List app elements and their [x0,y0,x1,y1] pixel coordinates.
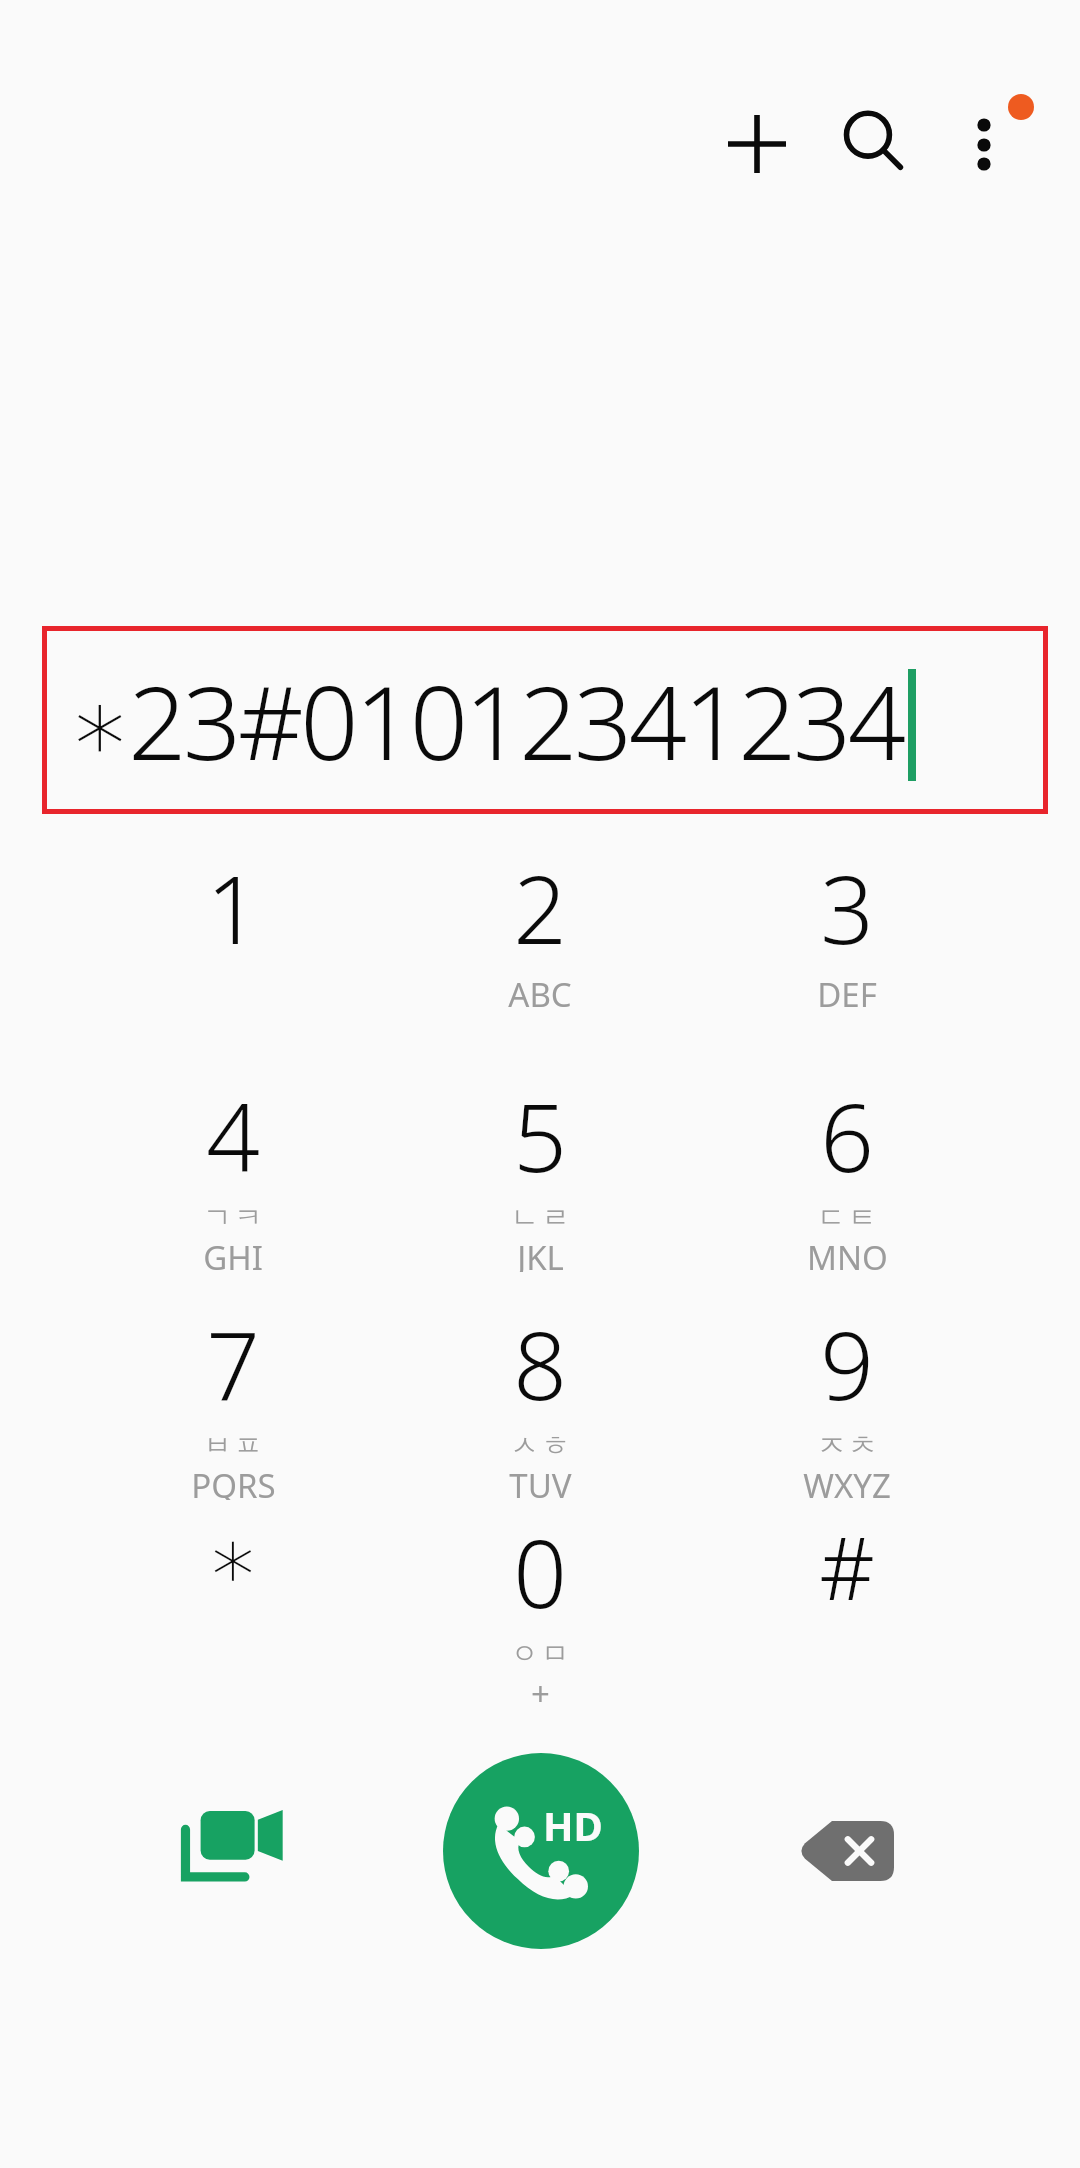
button[interactable]: 2 [390,844,690,1044]
button[interactable]: 4 [83,1072,383,1272]
staticText: # [819,1508,875,1625]
button[interactable]: 6 [697,1072,997,1272]
staticText: 3 [820,844,874,972]
button[interactable]: Call [443,1753,639,1949]
staticText: WXYZ [803,1463,891,1500]
staticText: HD [543,1798,603,1852]
button[interactable]: Search [830,99,920,189]
staticText: 1 [206,844,260,972]
button[interactable]: # [697,1508,997,1708]
button[interactable]: More options [938,70,1058,190]
button[interactable]: 0 [390,1508,690,1708]
staticText: TUV [509,1463,572,1500]
staticText: DEF [817,972,877,1017]
button[interactable]: Backspace [763,1766,933,1936]
staticText: PQRS [191,1463,276,1500]
staticText: 8 [513,1300,567,1428]
button[interactable]: ∗ [83,1508,383,1708]
button[interactable]: Add to contacts [712,99,802,189]
staticText: ㅈㅊ [816,1428,878,1463]
staticText: ㄴㄹ [509,1200,571,1235]
button[interactable]: 8 [390,1300,690,1500]
staticText: ABC [508,972,572,1017]
staticText: ㅂㅍ [202,1428,264,1463]
button[interactable]: 7 [83,1300,383,1500]
button[interactable]: 5 [390,1072,690,1272]
staticText: ∗23#01012341234 [68,651,903,790]
staticText: 7 [206,1300,260,1428]
button[interactable]: Video call [148,1766,318,1936]
staticText: 4 [206,1072,260,1200]
staticText: ㅅㅎ [509,1428,571,1463]
staticText: GHI [203,1235,263,1272]
staticText: ㄱㅋ [202,1200,264,1235]
staticText: + [531,1671,550,1708]
staticText: 6 [820,1072,874,1200]
button[interactable]: ∗23#01012341234 [42,626,1048,814]
staticText: MNO [807,1235,888,1272]
staticText: ㄷㅌ [816,1200,878,1235]
button[interactable]: 1 [83,844,383,1044]
button[interactable]: 3 [697,844,997,1044]
staticText: 5 [513,1072,567,1200]
staticText: ㅇㅁ [509,1636,571,1671]
button[interactable]: 9 [697,1300,997,1500]
staticText: 9 [820,1300,874,1428]
staticText: JKL [517,1235,564,1272]
staticText: ∗ [206,1508,260,1608]
staticText: 2 [513,844,567,972]
staticText: 0 [513,1508,567,1636]
